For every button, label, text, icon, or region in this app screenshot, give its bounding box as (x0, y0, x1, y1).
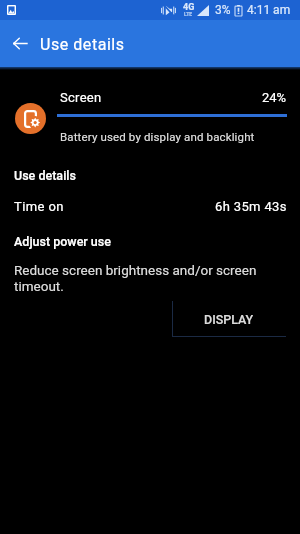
staticText: Use details (40, 35, 125, 54)
other: Sound muted (161, 5, 176, 16)
staticText: Time on (14, 199, 64, 214)
other: Battery low (235, 5, 242, 16)
staticText: Screen (60, 90, 102, 105)
staticText: DISPLAY (204, 312, 254, 327)
staticText: 4:11 am (247, 3, 291, 17)
button[interactable]: Time on (0, 190, 300, 217)
button[interactable]: DISPLAY (172, 301, 286, 337)
staticText: LTE (184, 11, 193, 17)
other: Screenshot captured (7, 5, 16, 15)
other: Mobile signal (197, 5, 209, 16)
staticText: Battery used by display and backlight (60, 130, 255, 143)
other: Screen usage (15, 103, 46, 134)
staticText: Use details (14, 168, 76, 183)
staticText: Reduce screen brightness and/or screen t… (14, 262, 262, 295)
staticText: 4G (183, 2, 195, 13)
button[interactable] (0, 77, 300, 149)
staticText: Adjust power use (14, 234, 111, 249)
staticText: 3% (215, 3, 231, 17)
staticText: 24% (262, 90, 287, 105)
staticText: 6h 35m 43s (215, 199, 287, 214)
button[interactable]: Navigate up (3, 27, 36, 60)
